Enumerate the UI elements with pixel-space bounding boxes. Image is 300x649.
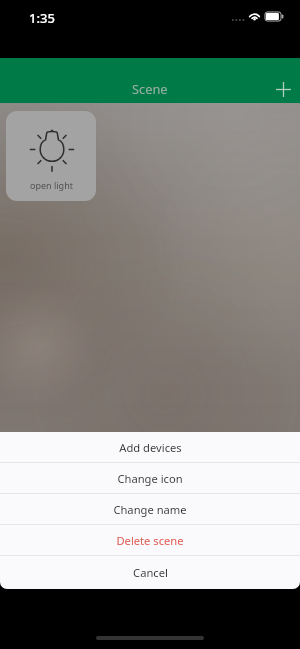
staticText: open light [30, 179, 73, 191]
staticText: 1:35 [29, 9, 55, 27]
button[interactable]: Add devices [0, 432, 300, 462]
button[interactable]: Change name [0, 494, 300, 524]
staticText: Scene [132, 80, 168, 97]
staticText: Change name [113, 502, 187, 517]
staticText: Change icon [117, 471, 183, 486]
staticText: Cancel [133, 565, 168, 580]
button[interactable]: Cancel [0, 556, 300, 589]
button[interactable]: Change icon [0, 463, 300, 493]
staticText: Delete scene [116, 533, 184, 548]
button[interactable]: open light [6, 111, 96, 201]
staticText: Add devices [119, 440, 182, 455]
button[interactable]: Add scene [266, 74, 300, 105]
button[interactable]: Delete scene [0, 525, 300, 555]
